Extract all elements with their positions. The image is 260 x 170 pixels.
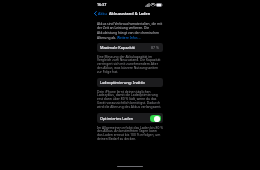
staticText: 87 %: [151, 45, 160, 50]
staticText: Akkuzustand & Laden: [109, 11, 151, 16]
other: Back: [94, 11, 97, 16]
staticText: Dein iPhone lernt deinen täglichen Ladez…: [97, 89, 163, 109]
button[interactable]: Back: [92, 10, 109, 17]
staticText: Ladeoptimierung: Inaktiv: [100, 80, 145, 85]
staticText: Eine Messung der Akkukapazität im Vergle…: [97, 54, 163, 74]
button[interactable]: Optimiertes Laden ein: [150, 115, 161, 122]
staticText: Im Allgemeinen erfolgt das Laden bis 80 …: [97, 125, 163, 141]
staticText: Akku: [98, 11, 107, 16]
staticText: Maximale Kapazität: [100, 45, 135, 50]
button[interactable]: Optimiertes Laden: [97, 113, 163, 123]
button[interactable]: Ladeoptimierung: Inaktiv: [97, 78, 163, 87]
staticText: Akkus sind Verbrauchsmaterialien, die mi…: [97, 21, 163, 39]
button[interactable]: Maximale Kapazität: [97, 43, 163, 52]
staticText: Optimiertes Laden: [100, 116, 134, 121]
staticText: 16:37: [97, 2, 107, 7]
